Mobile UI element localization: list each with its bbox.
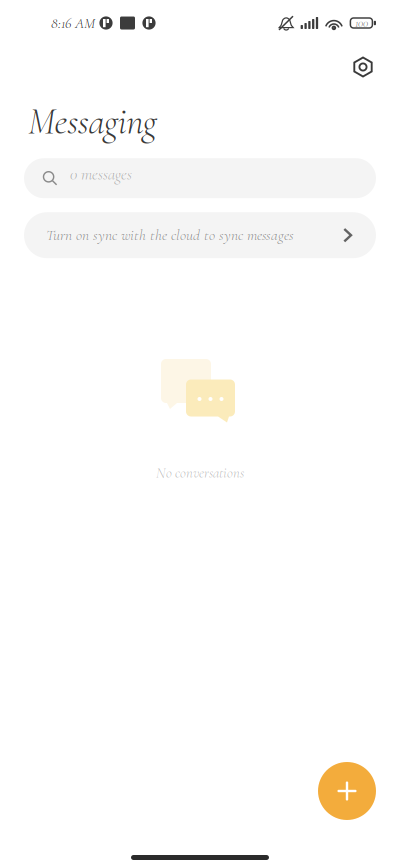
- button[interactable]: New message: [318, 762, 376, 820]
- staticText: No conversations: [156, 464, 244, 482]
- staticText: 0 messages: [70, 164, 132, 184]
- staticText: Turn on sync with the cloud to sync mess…: [46, 226, 294, 244]
- staticText: Messaging: [28, 99, 157, 144]
- staticText: 100: [355, 16, 368, 30]
- button[interactable]: 0 messages: [24, 158, 376, 198]
- button[interactable]: Turn on sync with the cloud to sync mess…: [24, 212, 376, 258]
- staticText: 8:16 AM: [51, 14, 95, 32]
- button[interactable]: Settings: [341, 45, 385, 89]
